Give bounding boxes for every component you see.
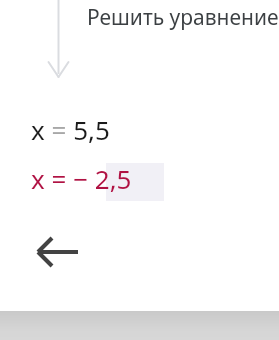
staticText: x = 5,5	[31, 112, 110, 147]
button[interactable]: Back	[30, 228, 88, 276]
staticText: x = − 2,5	[31, 161, 132, 196]
staticText: Решить уравнение	[87, 3, 279, 32]
